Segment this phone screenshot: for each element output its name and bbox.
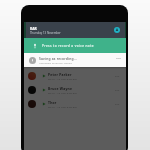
staticText: RAR (30, 26, 37, 30)
button[interactable]: Press to record a voice note (24, 38, 126, 53)
staticText: 0:12 (115, 75, 120, 78)
button[interactable]: Account (114, 27, 120, 33)
staticText: 00:12 · 13 Nov 8:30 pm (48, 105, 77, 108)
button[interactable]: Thor (24, 97, 126, 111)
button[interactable]: Saving as recording... (24, 53, 126, 67)
staticText: Saving as recording... (39, 56, 77, 60)
staticText: Thor (48, 100, 57, 104)
staticText: 00:12 · 13 Nov 8:30 pm (48, 91, 77, 94)
staticText: 0:20 (116, 56, 121, 59)
staticText: 00:12 · 13 Nov 8:30 pm (48, 77, 77, 80)
staticText: 0:12 (115, 103, 120, 106)
staticText: Peter Parker (48, 72, 72, 76)
button[interactable]: Bruce Wayne (24, 83, 126, 97)
staticText: Press to record a voice note (42, 44, 94, 48)
button[interactable]: Peter Parker (24, 69, 126, 83)
staticText: Thursday 13 November (30, 31, 61, 35)
staticText: Uploaded by Bruce Wayne (39, 61, 72, 64)
staticText: Bruce Wayne (48, 86, 73, 90)
staticText: 0:12 (115, 89, 120, 92)
